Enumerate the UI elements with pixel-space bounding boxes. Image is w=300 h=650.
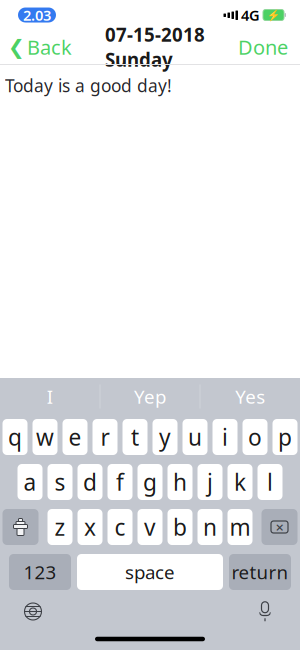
button[interactable]: y [152, 419, 177, 455]
button[interactable]: Done [230, 31, 300, 63]
staticText: p [278, 422, 292, 452]
button[interactable]: a [17, 464, 42, 500]
staticText: g [143, 467, 157, 497]
staticText: 123 [23, 560, 56, 584]
button[interactable]: Shift [2, 509, 38, 545]
staticText: × [275, 517, 283, 537]
staticText: c [114, 512, 125, 542]
staticText: b [173, 512, 187, 542]
staticText: w [36, 422, 54, 452]
staticText: x [84, 512, 96, 542]
staticText: u [188, 422, 202, 452]
button[interactable]: z [47, 509, 72, 545]
button[interactable]: h [167, 464, 192, 500]
button[interactable]: t [122, 419, 147, 455]
button[interactable]: I [0, 378, 99, 414]
button[interactable]: q [2, 419, 27, 455]
staticText: 4G [241, 5, 260, 25]
button[interactable]: u [182, 419, 207, 455]
staticText: 07-15-2018 Sunday [105, 22, 205, 72]
staticText: r [100, 422, 109, 452]
staticText: s [54, 467, 65, 497]
staticText: Done [238, 34, 288, 60]
staticText: q [8, 422, 22, 452]
staticText: ⚡ [267, 9, 280, 21]
staticText: n [203, 512, 217, 542]
staticText: 2.03 [23, 5, 51, 25]
staticText: l [267, 467, 273, 497]
staticText: y [159, 422, 171, 452]
staticText: return [231, 560, 288, 584]
button[interactable]: space [77, 554, 223, 590]
button[interactable]: c [107, 509, 132, 545]
staticText: v [144, 512, 156, 542]
button[interactable]: i [212, 419, 237, 455]
button[interactable]: k [227, 464, 252, 500]
button[interactable]: Yes [200, 378, 300, 414]
button[interactable]: d [77, 464, 102, 500]
staticText: z [54, 512, 65, 542]
button[interactable]: s [47, 464, 72, 500]
button[interactable]: return [229, 554, 291, 590]
button[interactable]: p [272, 419, 297, 455]
button[interactable]: v [137, 509, 162, 545]
button[interactable]: e [62, 419, 87, 455]
staticText: d [83, 467, 97, 497]
staticText: Yep [134, 384, 166, 409]
staticText: space [125, 560, 175, 584]
staticText: h [173, 467, 187, 497]
staticText: j [207, 467, 213, 497]
button[interactable]: Delete [261, 509, 297, 545]
staticText: a [23, 467, 36, 497]
button[interactable]: b [167, 509, 192, 545]
staticText: m [229, 512, 250, 542]
button[interactable]: m [227, 509, 252, 545]
button[interactable]: Dictate [248, 594, 282, 628]
button[interactable]: j [197, 464, 222, 500]
staticText: k [234, 467, 246, 497]
button[interactable]: x [77, 509, 102, 545]
button[interactable]: f [107, 464, 132, 500]
staticText: e [68, 422, 81, 452]
staticText: I [47, 384, 53, 409]
staticText: t [131, 422, 139, 452]
button[interactable]: n [197, 509, 222, 545]
staticText: o [248, 422, 262, 452]
staticText: Yes [235, 384, 265, 409]
button[interactable]: g [137, 464, 162, 500]
staticText: ❮ [8, 36, 25, 58]
button[interactable]: ❮ [0, 31, 80, 63]
button[interactable]: 123 [9, 554, 71, 590]
button[interactable]: l [257, 464, 282, 500]
staticText: Back [27, 34, 72, 60]
staticText: f [116, 467, 124, 497]
staticText: Today is a good day! [5, 74, 172, 97]
staticText: i [222, 422, 228, 452]
button[interactable]: r [92, 419, 117, 455]
button[interactable]: Switch keyboard [16, 594, 50, 628]
button[interactable]: w [32, 419, 57, 455]
button[interactable]: o [242, 419, 267, 455]
button[interactable]: Yep [100, 378, 199, 414]
